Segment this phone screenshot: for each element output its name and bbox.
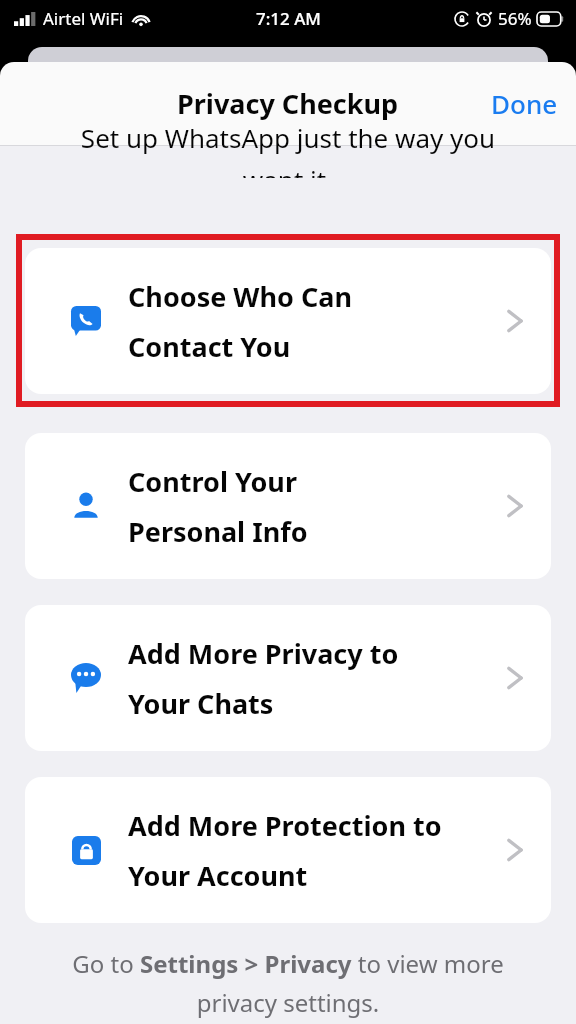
staticText: 56% <box>498 7 532 30</box>
other: Chats <box>71 663 101 693</box>
other: Personal info <box>72 492 100 520</box>
staticText: Privacy Checkup <box>177 85 399 122</box>
staticText: Go to Settings > Privacy to view more pr… <box>34 947 542 1019</box>
staticText: Add More Protection to Your Account <box>128 807 495 894</box>
staticText: Add More Privacy to Your Chats <box>128 635 495 722</box>
staticText: Control Your Personal Info <box>128 463 495 550</box>
other: Calls <box>71 306 101 336</box>
staticText: Done <box>491 86 558 121</box>
button[interactable]: Account protection <box>25 777 551 923</box>
staticText: Set up WhatsApp just the way you want it… <box>0 120 576 178</box>
button[interactable]: Done <box>473 74 576 133</box>
button[interactable]: Personal info <box>25 433 551 579</box>
button[interactable]: Calls <box>25 248 551 394</box>
other: Account protection <box>72 836 101 865</box>
staticText: Choose Who Can Contact You <box>128 278 495 365</box>
staticText: 7:12 AM <box>256 7 321 30</box>
staticText: Airtel WiFi <box>43 7 124 30</box>
button[interactable]: Chats <box>25 605 551 751</box>
